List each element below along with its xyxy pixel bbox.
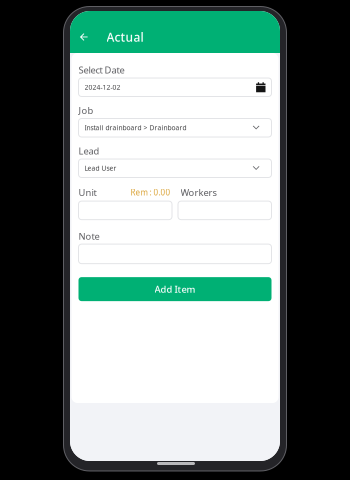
staticText: Rem : 0.00 bbox=[130, 187, 170, 198]
button[interactable]: Lead User bbox=[78, 159, 271, 177]
staticText: Job bbox=[78, 104, 93, 117]
staticText: Lead bbox=[78, 145, 99, 157]
button[interactable] bbox=[178, 201, 271, 220]
button[interactable] bbox=[78, 244, 271, 264]
staticText: Add Item bbox=[154, 283, 195, 295]
button[interactable]: Back bbox=[70, 24, 107, 50]
staticText: Unit bbox=[78, 186, 96, 198]
staticText: Lead User bbox=[84, 164, 116, 173]
button[interactable] bbox=[78, 201, 172, 220]
button[interactable]: Install drainboard > Drainboard bbox=[78, 118, 271, 137]
button[interactable]: Add Item bbox=[78, 277, 271, 301]
staticText: 2024-12-02 bbox=[84, 83, 120, 92]
staticText: Actual bbox=[107, 29, 144, 45]
staticText: Note bbox=[78, 230, 99, 242]
staticText: Select Date bbox=[78, 64, 124, 76]
button[interactable]: 2024-12-02 bbox=[78, 78, 271, 96]
staticText: Install drainboard > Drainboard bbox=[84, 123, 186, 132]
staticText: Workers bbox=[180, 186, 216, 198]
